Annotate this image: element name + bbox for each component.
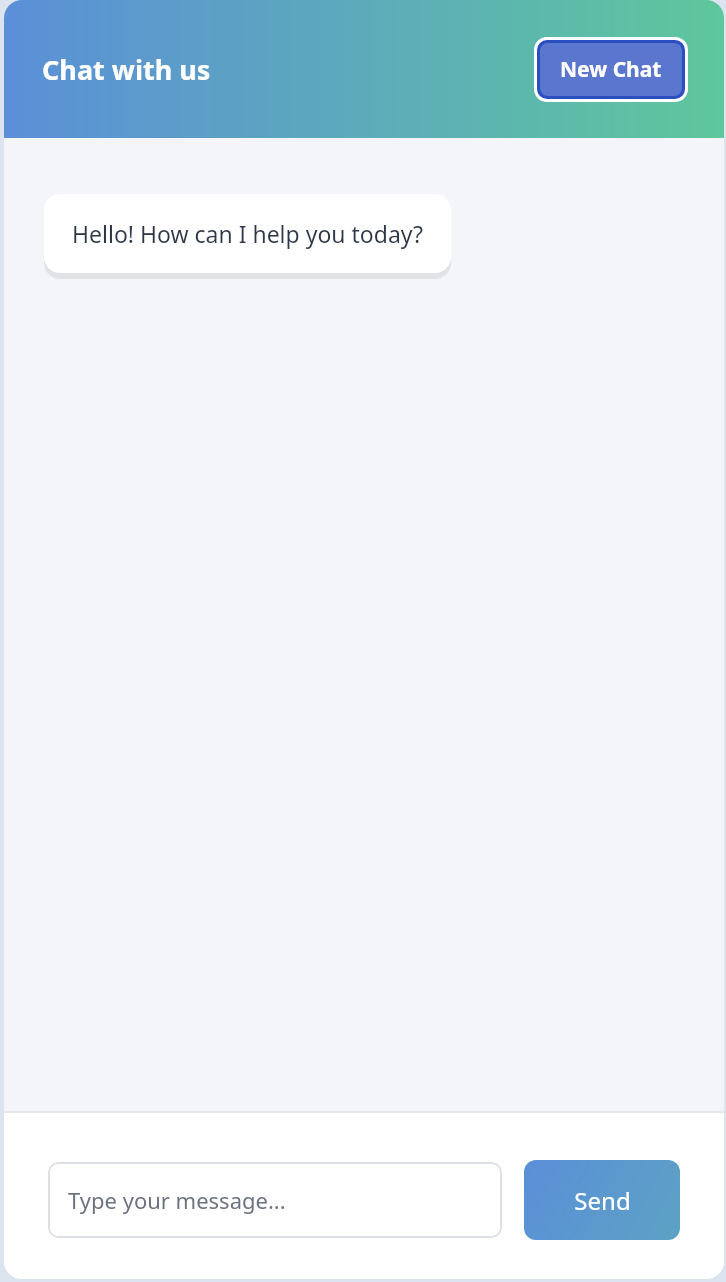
staticText: Type your message... (68, 1185, 286, 1215)
staticText: Hello! How can I help you today? (72, 218, 423, 249)
staticText: Send (574, 1184, 631, 1217)
staticText: New Chat (560, 55, 662, 84)
button[interactable]: Send (524, 1160, 680, 1240)
staticText: Chat with us (42, 51, 211, 88)
button[interactable]: Hello! How can I help you today? (44, 194, 451, 273)
button[interactable]: Type your message... (48, 1162, 502, 1238)
button[interactable]: New Chat (540, 43, 682, 96)
